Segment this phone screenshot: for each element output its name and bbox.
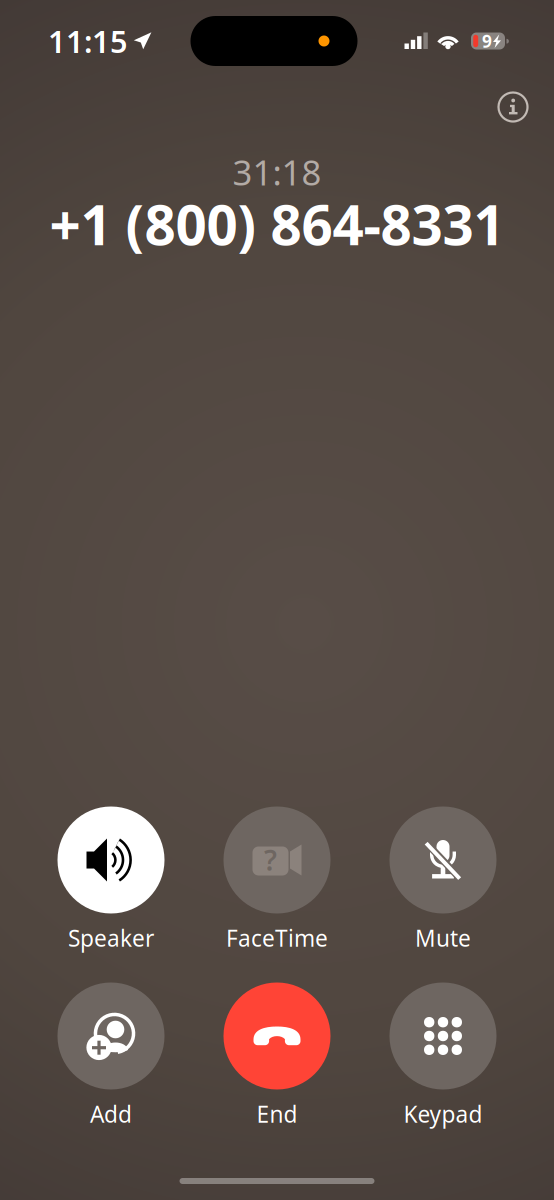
button[interactable]: Mute (363, 806, 523, 962)
button[interactable]: Speaker (31, 806, 191, 962)
button[interactable]: Add (31, 982, 191, 1138)
staticText: 31:18 (232, 149, 321, 195)
button[interactable]: End (197, 982, 357, 1138)
staticText: Keypad (403, 1099, 482, 1129)
staticText: End (256, 1099, 297, 1129)
button[interactable]: ? (197, 806, 357, 962)
staticText: +1 (800) 864-8331 (49, 188, 504, 260)
button[interactable]: Call details (487, 81, 539, 133)
staticText: 11:15 (48, 21, 128, 61)
staticText: Mute (415, 923, 471, 953)
staticText: FaceTime (226, 923, 328, 953)
staticText: ? (264, 841, 277, 879)
staticText: Speaker (68, 923, 154, 953)
staticText: Add (90, 1099, 132, 1129)
button[interactable]: Keypad (363, 982, 523, 1138)
staticText: 9 (482, 29, 492, 52)
